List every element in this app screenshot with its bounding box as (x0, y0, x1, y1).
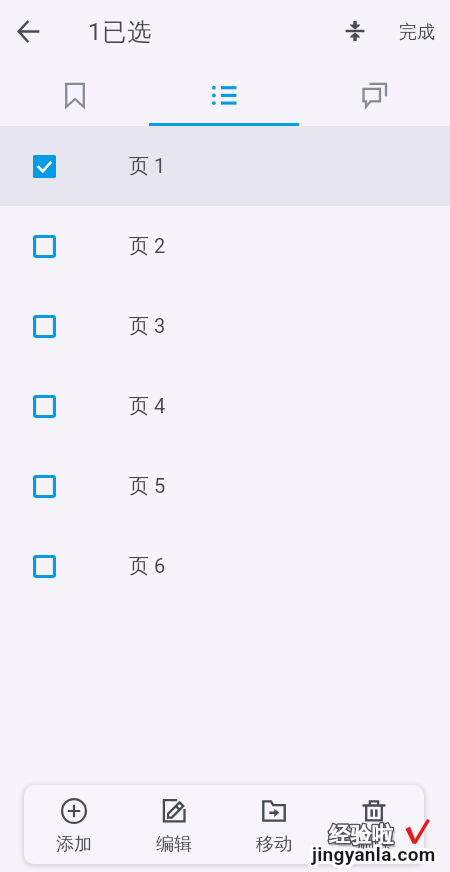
button[interactable]: 完成 (395, 14, 439, 50)
button[interactable]: Collapse (335, 11, 375, 51)
staticText: jingyanla.com (312, 843, 436, 865)
button[interactable]: 删除 (324, 785, 424, 864)
staticText: 经验啦 (329, 822, 394, 848)
staticText: 编辑 (156, 833, 192, 856)
button[interactable]: 添加 (24, 785, 124, 864)
button[interactable]: Back (8, 11, 48, 51)
button[interactable]: 页 1 (0, 126, 450, 206)
staticText: 经验啦 (329, 822, 394, 848)
staticText: 移动 (256, 833, 292, 856)
button[interactable]: 编辑 (124, 785, 224, 864)
staticText: 页 2 (129, 234, 166, 259)
staticText: 页 3 (129, 314, 166, 339)
button[interactable]: 页 3 (0, 286, 450, 366)
staticText: 页 4 (129, 394, 166, 419)
staticText: 页 6 (129, 554, 166, 579)
button[interactable]: 页 2 (0, 206, 450, 286)
button[interactable]: 页 6 (0, 526, 450, 606)
staticText: 页 1 (129, 154, 166, 179)
button[interactable]: Comments (300, 65, 450, 123)
staticText: 添加 (56, 833, 92, 856)
staticText: 1已选 (88, 17, 153, 47)
staticText: 页 5 (129, 474, 166, 499)
button[interactable]: Bookmarks (0, 65, 150, 123)
staticText: jingyanla.com (312, 843, 436, 865)
button[interactable]: 移动 (224, 785, 324, 864)
button[interactable]: 页 5 (0, 446, 450, 526)
staticText: 完成 (399, 21, 435, 44)
button[interactable]: List (150, 65, 300, 123)
staticText: 删除 (356, 833, 392, 856)
button[interactable]: 页 4 (0, 366, 450, 446)
